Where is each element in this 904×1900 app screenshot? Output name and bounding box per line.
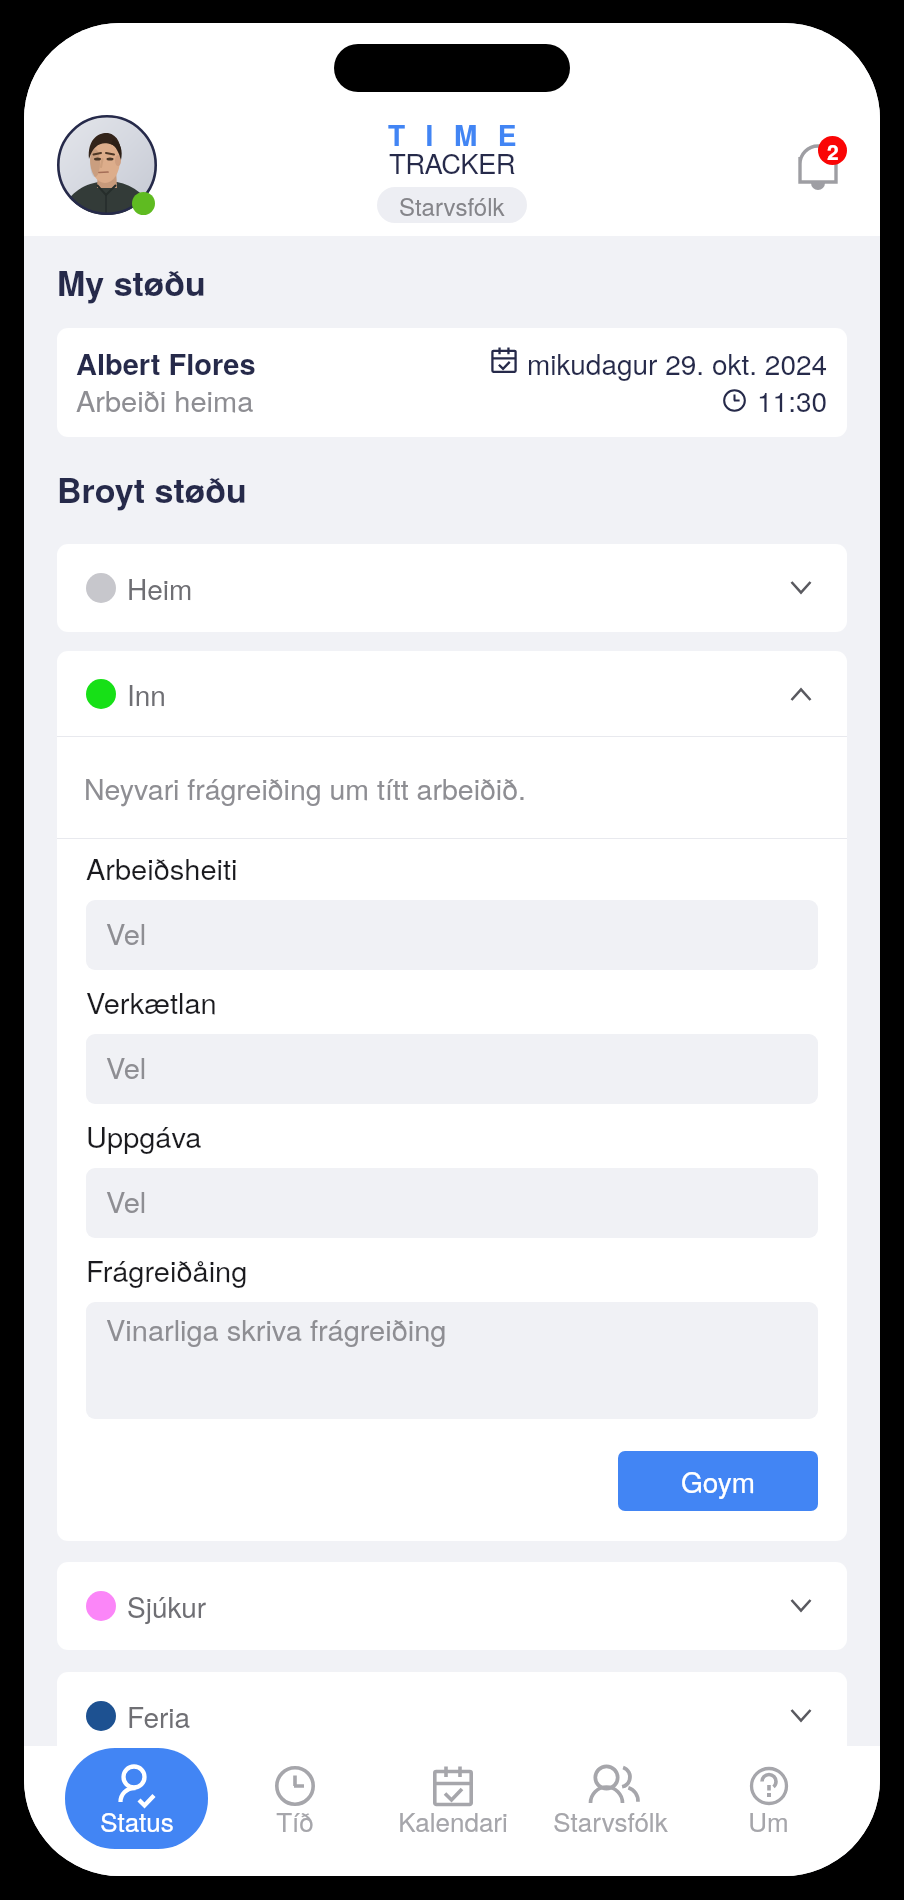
staticText: Inn — [127, 674, 166, 714]
staticText: Vel — [106, 912, 147, 954]
button[interactable]: Kalendari — [381, 1748, 524, 1849]
staticText: Verkætlan — [86, 981, 217, 1023]
staticText: Uppgáva — [86, 1115, 202, 1157]
staticText: Tíð — [276, 1802, 314, 1839]
staticText: Frágreiðåing — [86, 1249, 248, 1291]
staticText: Goym — [681, 1461, 756, 1501]
staticText: 2 — [827, 136, 839, 165]
staticText: Heim — [127, 568, 193, 608]
button[interactable]: Vel — [86, 1034, 818, 1104]
button[interactable]: Vinarliga skriva frágreiðing — [86, 1302, 818, 1419]
staticText: Albert Flores — [76, 342, 256, 384]
button[interactable]: Status — [65, 1748, 208, 1849]
button[interactable]: Goym — [618, 1451, 818, 1511]
staticText: Broyt støðu — [57, 465, 247, 514]
staticText: Feria — [127, 1696, 191, 1736]
button[interactable]: Inn — [57, 651, 847, 736]
button[interactable]: Feria — [57, 1672, 847, 1760]
button[interactable]: Heim — [57, 544, 847, 632]
button[interactable]: Starvsfólk — [377, 187, 527, 223]
staticText: Arbeiðsheiti — [86, 847, 238, 889]
staticText: Arbeiði heima — [76, 379, 254, 421]
button[interactable]: Starvsfólk — [539, 1748, 682, 1849]
button[interactable]: Profile photo — [57, 115, 157, 215]
staticText: mikudagur 29. okt. 2024 — [527, 343, 828, 383]
button[interactable]: Tíð — [223, 1748, 366, 1849]
button[interactable]: Um — [697, 1748, 840, 1849]
button[interactable]: Notifications — [768, 133, 848, 213]
staticText: Status — [100, 1802, 174, 1839]
staticText: Neyvari frágreiðing um títt arbeiðið. — [84, 767, 526, 808]
button[interactable]: Sjúkur — [57, 1562, 847, 1650]
staticText: TRACKER — [389, 142, 515, 181]
staticText: Vel — [106, 1180, 147, 1222]
button[interactable]: Vel — [86, 900, 818, 970]
staticText: My støðu — [57, 258, 206, 307]
staticText: TIME — [388, 114, 537, 154]
staticText: Um — [748, 1802, 789, 1839]
staticText: Vel — [106, 1046, 147, 1088]
staticText: Starvsfólk — [553, 1802, 668, 1839]
staticText: Kalendari — [398, 1802, 508, 1839]
staticText: Sjúkur — [127, 1586, 207, 1626]
staticText: Vinarliga skriva frágreiðing — [106, 1308, 447, 1350]
button[interactable]: Vel — [86, 1168, 818, 1238]
button[interactable]: Albert Flores — [57, 328, 847, 437]
staticText: Starvsfólk — [399, 188, 505, 222]
staticText: 11:30 — [757, 380, 828, 420]
